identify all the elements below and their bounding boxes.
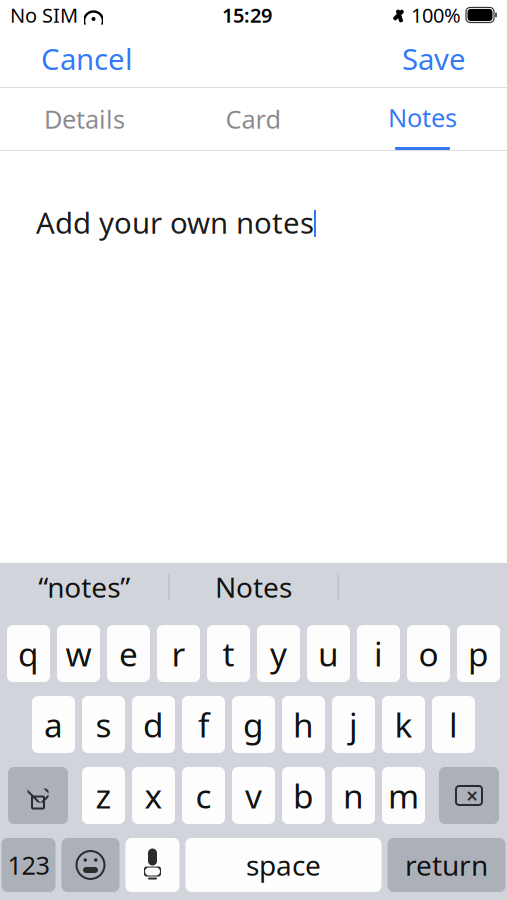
staticText: f bbox=[198, 702, 209, 747]
button[interactable]: a bbox=[32, 696, 75, 753]
button[interactable]: o bbox=[407, 625, 450, 682]
button[interactable]: q bbox=[7, 625, 50, 682]
staticText: a bbox=[44, 702, 63, 747]
staticText: y bbox=[270, 631, 287, 676]
button[interactable]: Notes bbox=[169, 563, 338, 611]
button[interactable]: return bbox=[387, 838, 505, 892]
button[interactable]: m bbox=[382, 767, 425, 824]
button[interactable]: z bbox=[82, 767, 125, 824]
staticText: c bbox=[195, 773, 211, 818]
staticText: j bbox=[349, 702, 358, 747]
staticText: p bbox=[468, 631, 489, 676]
staticText: n bbox=[343, 773, 364, 818]
staticText: 15:29 bbox=[222, 2, 272, 28]
staticText: No SIM bbox=[10, 2, 78, 28]
button[interactable]: x bbox=[132, 767, 175, 824]
staticText: Notes bbox=[388, 101, 457, 134]
staticText: Notes bbox=[215, 568, 292, 606]
staticText: i bbox=[374, 631, 383, 676]
staticText: d bbox=[143, 702, 164, 747]
staticText: 100% bbox=[411, 2, 461, 28]
staticText: v bbox=[245, 773, 262, 818]
button[interactable]: d bbox=[132, 696, 175, 753]
staticText: 123 bbox=[7, 848, 49, 882]
staticText: return bbox=[405, 846, 488, 884]
staticText bbox=[460, 0, 466, 30]
button[interactable]: y bbox=[257, 625, 300, 682]
button[interactable]: Notes bbox=[338, 88, 507, 150]
staticText: Cancel bbox=[41, 39, 133, 78]
button[interactable]: f bbox=[182, 696, 225, 753]
staticText: Save bbox=[402, 39, 466, 78]
staticText: w bbox=[65, 631, 91, 676]
button[interactable]: Delete bbox=[439, 767, 499, 824]
staticText: q bbox=[18, 631, 39, 676]
staticText: g bbox=[243, 702, 264, 747]
staticText: u bbox=[318, 631, 339, 676]
staticText: h bbox=[293, 702, 314, 747]
staticText: s bbox=[95, 702, 111, 747]
button[interactable]: h bbox=[282, 696, 325, 753]
staticText: l bbox=[449, 702, 458, 747]
button[interactable]: space bbox=[185, 838, 381, 892]
button[interactable]: t bbox=[207, 625, 250, 682]
staticText: x bbox=[144, 773, 162, 818]
button[interactable]: i bbox=[357, 625, 400, 682]
button[interactable]: b bbox=[282, 767, 325, 824]
button[interactable]: 123 bbox=[1, 838, 55, 892]
button[interactable]: “notes” bbox=[0, 563, 168, 611]
button[interactable]: Cancel bbox=[33, 33, 141, 84]
staticText: “notes” bbox=[38, 568, 130, 606]
button[interactable]: n bbox=[332, 767, 375, 824]
button[interactable]: s bbox=[82, 696, 125, 753]
button[interactable]: Details bbox=[0, 88, 169, 150]
staticText: k bbox=[394, 702, 412, 747]
staticText: e bbox=[119, 631, 138, 676]
button[interactable]: Emoji keyboard bbox=[61, 838, 119, 892]
button[interactable]: r bbox=[157, 625, 200, 682]
button[interactable]: g bbox=[232, 696, 275, 753]
button[interactable]: l bbox=[432, 696, 475, 753]
staticText: z bbox=[95, 773, 111, 818]
button[interactable]: v bbox=[232, 767, 275, 824]
button[interactable]: u bbox=[307, 625, 350, 682]
button[interactable]: j bbox=[332, 696, 375, 753]
button[interactable]: Dictation bbox=[125, 838, 179, 892]
staticText: t bbox=[222, 631, 234, 676]
button[interactable]: Shift bbox=[8, 767, 68, 824]
button[interactable]: c bbox=[182, 767, 225, 824]
button[interactable]: k bbox=[382, 696, 425, 753]
staticText: r bbox=[171, 631, 185, 676]
button[interactable]: p bbox=[457, 625, 500, 682]
button[interactable]: w bbox=[57, 625, 100, 682]
button[interactable]: Save bbox=[394, 33, 474, 84]
staticText: Add your own notes bbox=[36, 203, 314, 242]
staticText: Card bbox=[225, 102, 281, 136]
staticText: space bbox=[246, 846, 321, 884]
button[interactable]: Card bbox=[169, 88, 338, 150]
staticText: b bbox=[293, 773, 314, 818]
button[interactable]: e bbox=[107, 625, 150, 682]
staticText: Details bbox=[44, 102, 125, 136]
staticText: × bbox=[466, 781, 478, 810]
staticText: o bbox=[418, 631, 438, 676]
staticText: m bbox=[388, 773, 419, 818]
